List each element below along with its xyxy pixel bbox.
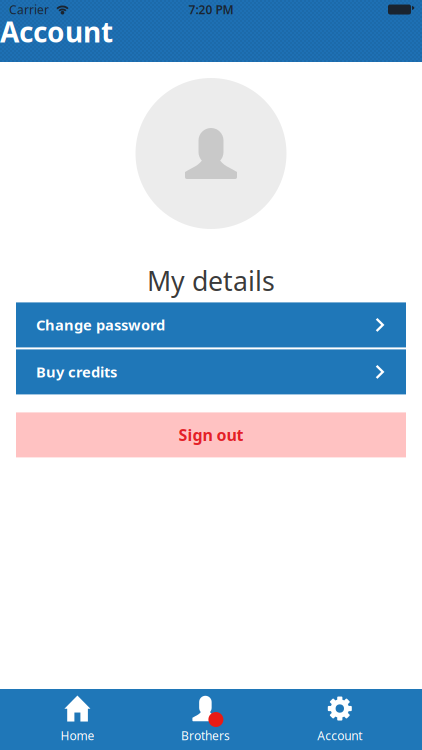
staticText: Change password xyxy=(36,315,165,335)
staticText: Account xyxy=(0,13,113,50)
button[interactable]: Home xyxy=(22,689,132,750)
staticText: Brothers xyxy=(181,727,230,743)
button[interactable]: Brothers xyxy=(150,689,260,750)
button[interactable]: Sign out xyxy=(16,412,406,457)
button[interactable]: Buy credits xyxy=(16,349,406,394)
staticText: Buy credits xyxy=(36,362,117,382)
button[interactable]: Change password xyxy=(16,302,406,347)
button[interactable]: Account xyxy=(285,689,395,750)
staticText: 7:20 PM xyxy=(188,1,233,17)
staticText: Account xyxy=(317,727,362,743)
staticText: Sign out xyxy=(178,424,243,445)
staticText: My details xyxy=(147,263,275,298)
staticText: Home xyxy=(60,727,94,743)
staticText: Carrier xyxy=(9,1,49,17)
